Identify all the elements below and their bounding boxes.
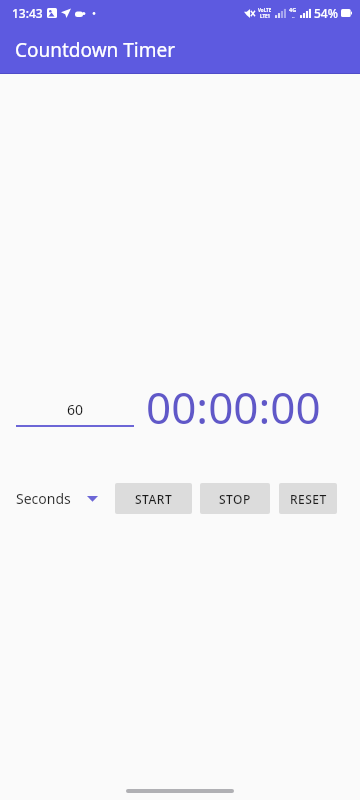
staticText: 54% (314, 5, 338, 21)
button[interactable]: 60 (16, 400, 134, 427)
staticText: LTE1 (260, 13, 271, 19)
staticText: 13:43 (12, 5, 43, 21)
staticText: Seconds (16, 489, 71, 508)
other: Select time unit (87, 495, 98, 502)
staticText: STOP (219, 491, 251, 507)
staticText: Countdown Timer (15, 37, 176, 63)
staticText: VoLTE (258, 7, 272, 13)
button[interactable]: RESET (279, 483, 337, 514)
staticText: 00:00:00 (146, 377, 321, 437)
button[interactable]: Seconds (16, 489, 98, 508)
staticText: RESET (290, 491, 327, 507)
staticText: 4G (289, 6, 297, 13)
button[interactable]: STOP (200, 483, 270, 514)
button[interactable]: START (115, 483, 192, 514)
staticText: 60 (16, 400, 134, 419)
staticText: .. (292, 13, 295, 20)
staticText: START (135, 491, 173, 507)
